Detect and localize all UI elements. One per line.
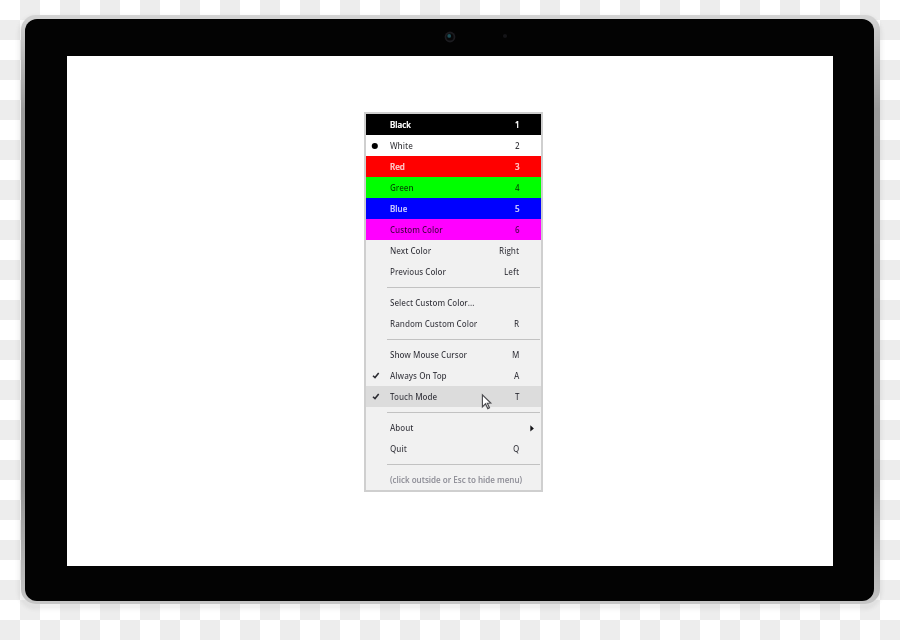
staticText: Right	[499, 245, 520, 256]
button[interactable]: Quit	[366, 438, 541, 459]
button[interactable]: Random Custom Color	[366, 313, 541, 334]
other: Front camera	[443, 30, 457, 44]
button[interactable]: Show Mouse Cursor	[366, 344, 541, 365]
button[interactable]: Custom Color	[366, 219, 541, 240]
button[interactable]: Previous Color	[366, 261, 541, 282]
staticText: Always On Top	[390, 370, 447, 381]
staticText: (click outside or Esc to hide menu)	[390, 474, 523, 485]
button[interactable]: Next Color	[366, 240, 541, 261]
staticText: 3	[515, 161, 520, 172]
staticText: M	[512, 349, 520, 360]
button[interactable]: Red	[366, 156, 541, 177]
staticText: 1	[515, 119, 520, 130]
staticText: Show Mouse Cursor	[390, 349, 468, 360]
staticText: Touch Mode	[390, 391, 438, 402]
staticText: 2	[515, 140, 520, 151]
staticText: Next Color	[390, 245, 432, 256]
staticText: Q	[513, 443, 520, 454]
staticText: 4	[515, 182, 520, 193]
button[interactable]: Select Custom Color...	[366, 292, 541, 313]
staticText: Blue	[390, 203, 408, 214]
button[interactable]: About	[366, 417, 541, 438]
button[interactable]: Blue	[366, 198, 541, 219]
staticText: Previous Color	[390, 266, 446, 277]
button[interactable]: Black	[366, 114, 541, 135]
staticText: Custom Color	[390, 224, 443, 235]
staticText: 6	[515, 224, 520, 235]
staticText: Red	[390, 161, 405, 172]
staticText: R	[514, 318, 520, 329]
button[interactable]: White	[366, 135, 541, 156]
staticText: About	[390, 422, 414, 433]
button[interactable]: Always On Top	[366, 365, 541, 386]
staticText: T	[515, 391, 520, 402]
staticText: Green	[390, 182, 414, 193]
staticText: Left	[504, 266, 520, 277]
staticText: A	[514, 370, 520, 381]
staticText: Black	[390, 119, 411, 130]
staticText: White	[390, 140, 413, 151]
button[interactable]: Touch Mode	[366, 386, 541, 407]
staticText: 5	[515, 203, 520, 214]
other: Mouse pointer	[481, 386, 497, 407]
staticText: Random Custom Color	[390, 318, 478, 329]
staticText: Select Custom Color...	[390, 297, 475, 308]
staticText: Quit	[390, 443, 407, 454]
button[interactable]: Green	[366, 177, 541, 198]
